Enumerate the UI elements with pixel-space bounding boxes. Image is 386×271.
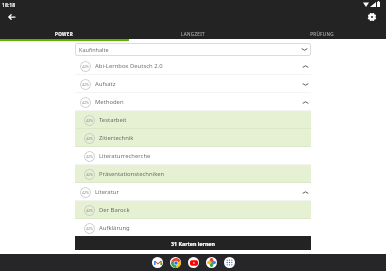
button[interactable]: All apps	[224, 257, 235, 268]
button[interactable]: 42%	[75, 75, 311, 93]
button[interactable]: Gmail	[152, 257, 163, 268]
button[interactable]: LANGZEIT	[128, 29, 257, 39]
button[interactable]: Photos	[206, 257, 217, 268]
staticText: 42%	[82, 82, 90, 87]
button[interactable]: 42%	[75, 93, 311, 111]
staticText: 42%	[82, 64, 90, 69]
staticText: Literatur	[95, 188, 119, 196]
button[interactable]: Settings	[366, 11, 378, 23]
staticText: 42%	[82, 190, 90, 195]
staticText: PRÜFUNG	[310, 31, 334, 37]
staticText: 42%	[86, 136, 94, 141]
button[interactable]: 42%	[75, 183, 311, 201]
button[interactable]: PRÜFUNG	[257, 29, 386, 39]
button[interactable]: 42%	[75, 111, 311, 129]
staticText: 31 Karten lernen	[171, 240, 215, 247]
button[interactable]: 42%	[75, 147, 311, 165]
button[interactable]: POWER	[0, 29, 128, 39]
button[interactable]: 42%	[75, 57, 311, 75]
staticText: 42%	[86, 118, 94, 123]
button[interactable]: YouTube	[188, 257, 199, 268]
staticText: 42%	[86, 208, 94, 213]
staticText: Der Barock	[99, 206, 130, 214]
staticText: Literaturrecherche	[99, 152, 151, 160]
staticText: 42%	[82, 100, 90, 105]
button[interactable]: 42%	[75, 165, 311, 183]
button[interactable]: 31 Karten lernen	[75, 236, 311, 250]
button[interactable]: 42%	[75, 129, 311, 147]
staticText: 42%	[86, 226, 94, 231]
staticText: Testarbeit	[99, 116, 127, 124]
staticText: LANGZEIT	[181, 31, 205, 37]
staticText: 18:18	[2, 1, 16, 8]
button[interactable]: 42%	[75, 201, 311, 219]
staticText: 42%	[86, 154, 94, 159]
staticText: 42%	[86, 172, 94, 177]
staticText: Abi-Lernbox Deutsch 2.0	[95, 62, 163, 70]
staticText: POWER	[55, 31, 73, 37]
button[interactable]: 42%	[75, 219, 311, 237]
staticText: Methoden	[95, 98, 124, 106]
staticText: Aufklärung	[99, 224, 130, 232]
button[interactable]: Chrome	[170, 257, 181, 268]
staticText: Kaufinhalte	[79, 46, 109, 53]
button[interactable]: Back	[5, 11, 17, 23]
staticText: Zitiertechnik	[99, 134, 134, 142]
staticText: Aufsatz	[95, 80, 116, 88]
staticText: Präsentationstechniken	[99, 170, 165, 178]
button[interactable]: Kaufinhalte	[75, 43, 311, 56]
